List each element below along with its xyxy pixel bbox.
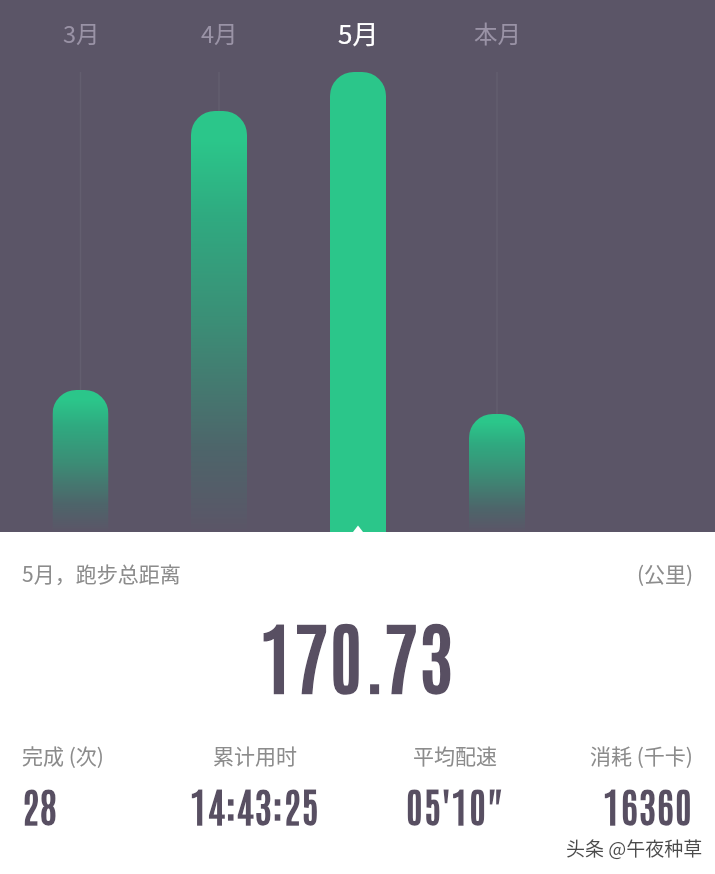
staticText: 28	[22, 779, 58, 831]
staticText: 14:43:25	[190, 779, 320, 831]
button[interactable]: 完成 (次)	[22, 740, 104, 831]
button[interactable]: 平均配速	[406, 740, 504, 831]
staticText: 头条 @午夜种草	[566, 834, 703, 862]
staticText: 170.73	[260, 603, 455, 704]
button[interactable]: 4月	[157, 0, 281, 532]
staticText: (公里)	[637, 558, 694, 588]
staticText: 05'10"	[406, 779, 504, 831]
button[interactable]: 5月	[296, 0, 420, 532]
button[interactable]: 累计用时	[190, 740, 320, 831]
staticText: 完成 (次)	[22, 740, 104, 770]
staticText: 本月	[474, 16, 521, 50]
staticText: 5月，跑步总距离	[22, 558, 181, 588]
staticText: 5月	[338, 14, 379, 52]
staticText: 16360	[603, 779, 693, 831]
button[interactable]: 本月	[435, 0, 559, 532]
button[interactable]: 消耗 (千卡)	[590, 740, 693, 831]
staticText: 平均配速	[413, 740, 497, 770]
button[interactable]: 3月	[19, 0, 143, 532]
staticText: 消耗 (千卡)	[590, 740, 693, 770]
staticText: 累计用时	[213, 740, 297, 770]
staticText: 3月	[63, 16, 100, 50]
staticText: 4月	[201, 16, 238, 50]
